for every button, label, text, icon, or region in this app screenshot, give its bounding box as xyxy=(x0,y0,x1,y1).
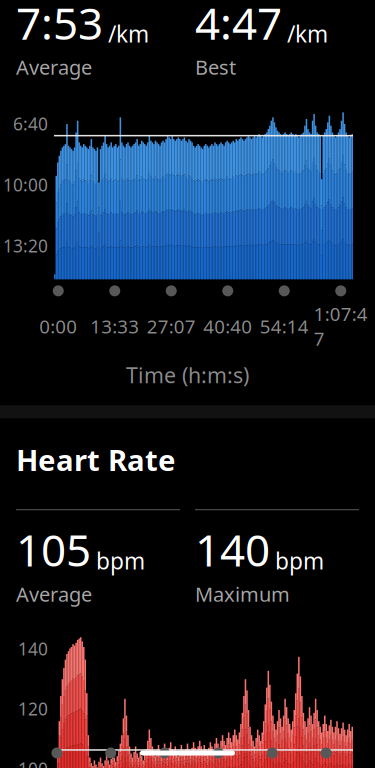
staticText: 40:40 xyxy=(203,314,252,338)
staticText: 0:00 xyxy=(39,314,77,338)
staticText: /km xyxy=(108,19,149,49)
staticText: Average xyxy=(16,581,92,607)
staticText: 105 xyxy=(16,520,91,579)
staticText: /km xyxy=(287,19,328,49)
staticText: 10:00 xyxy=(3,173,48,196)
staticText: 27:07 xyxy=(147,314,196,338)
staticText: 100 xyxy=(18,757,48,768)
staticText: Maximum xyxy=(195,581,290,607)
staticText: 120 xyxy=(18,697,48,720)
staticText: 13:20 xyxy=(3,234,48,257)
staticText: bpm xyxy=(96,545,145,576)
staticText: 13:33 xyxy=(90,314,139,338)
staticText: Heart Rate xyxy=(16,440,176,479)
staticText: bpm xyxy=(275,545,324,576)
staticText: Average xyxy=(16,54,92,80)
staticText: 140 xyxy=(18,637,48,660)
staticText: 54:14 xyxy=(260,314,309,338)
staticText: 7:53 xyxy=(16,0,103,52)
staticText: 6:40 xyxy=(13,112,48,135)
staticText: Best xyxy=(195,54,236,80)
staticText: 140 xyxy=(195,520,270,579)
staticText: 4:47 xyxy=(195,0,282,52)
staticText: Time (h:m:s) xyxy=(126,361,249,389)
staticText: 1:07:47 xyxy=(314,301,368,351)
